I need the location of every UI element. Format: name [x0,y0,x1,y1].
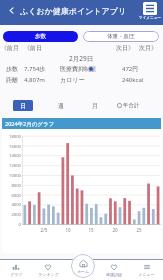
staticText: 2024年2月のグラフ [5,120,55,128]
staticText: 健康記録 [106,272,122,277]
staticText: 7,754歩 [24,65,46,73]
staticText: 2/5 [37,227,51,233]
staticText: ランキング [38,272,59,277]
staticText: 25 [132,227,146,233]
staticText: 歩数 [6,65,18,73]
staticText: 体重・血圧 [107,33,135,40]
staticText: 240kcal [122,76,144,84]
staticText: 日 [20,102,26,110]
staticText: 14000 [2,153,21,159]
button[interactable]: 《前月 [1,44,19,52]
staticText: 472円 [122,65,139,73]
button[interactable]: メニュー [130,260,163,280]
staticText: 4000 [2,202,21,208]
staticText: 歩数 [35,33,46,40]
button[interactable]: 《前日 [24,44,42,52]
staticText: マイメニュー [139,16,161,21]
button[interactable]: 年合計 [117,100,140,111]
button[interactable]: Back [3,2,20,19]
staticText: 週 [58,102,64,110]
button[interactable]: 次日》 [116,44,134,52]
button[interactable]: グラフ [0,260,32,280]
staticText: 年合計 [123,102,140,109]
staticText: 8000 [2,183,21,189]
staticText: グラフ [10,272,23,277]
staticText: 16000 [2,144,21,150]
staticText: 20 [108,227,122,233]
staticText: 15 [84,227,98,233]
staticText: 距離 [6,76,18,84]
button[interactable]: 月 [85,100,105,111]
staticText: 18000 [2,134,21,140]
staticText: 0 [2,222,21,228]
button[interactable]: My menu [139,2,161,21]
staticText: 4,807m [24,76,45,84]
staticText: 月 [92,102,98,110]
staticText: 2月29日 [69,54,94,63]
staticText: 医療費抑制額 [60,65,96,73]
button[interactable]: 体重・血圧 [83,31,159,42]
staticText: ふくおか健康ポイントアプリ [20,6,127,16]
button[interactable]: 次月》 [139,44,157,52]
staticText: メニュー [138,272,155,277]
staticText: 10000 [2,173,21,179]
staticText: 2000 [2,212,21,218]
button[interactable]: 日 [13,100,33,111]
staticText: 12000 [2,163,21,169]
button[interactable]: 健康記録 [97,260,130,280]
staticText: カロリー [60,76,85,84]
staticText: 6000 [2,193,21,199]
staticText: 10 [61,227,75,233]
button[interactable]: ホーム [71,254,95,278]
button[interactable]: ランキング [32,260,64,280]
button[interactable]: 週 [51,100,71,111]
staticText: ホーム [77,269,90,274]
button[interactable]: 歩数 [3,31,78,42]
